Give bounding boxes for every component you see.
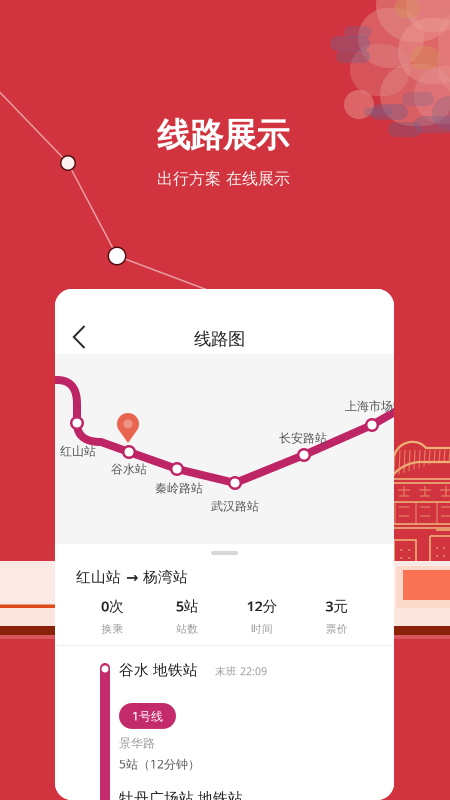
- staticText: 时间: [251, 622, 273, 636]
- staticText: 谷水站: [111, 462, 147, 477]
- staticText: 换乘: [101, 622, 123, 636]
- staticText: 线路图: [194, 328, 245, 350]
- staticText: 景华路: [119, 736, 155, 751]
- staticText: 5站（12分钟）: [119, 756, 200, 772]
- staticText: 红山站 → 杨湾站: [76, 568, 188, 586]
- staticText: 武汉路站: [211, 499, 259, 514]
- staticText: 上海市场站: [345, 399, 405, 414]
- staticText: 秦岭路站: [155, 481, 203, 496]
- staticText: 0次: [101, 596, 124, 615]
- staticText: 5站: [176, 596, 199, 615]
- staticText: 票价: [326, 622, 348, 636]
- staticText: 出行方案 在线展示: [157, 169, 290, 189]
- staticText: 红山站: [60, 444, 96, 459]
- staticText: 3元: [325, 596, 348, 615]
- staticText: 站数: [176, 622, 198, 636]
- staticText: 线路展示: [157, 115, 289, 156]
- staticText: 长安路站: [279, 431, 327, 446]
- staticText: 牡丹广场站 地铁站: [119, 789, 243, 800]
- staticText: 12分: [246, 596, 277, 615]
- staticText: 谷水 地铁站: [119, 661, 198, 679]
- staticText: 1号线: [132, 708, 163, 724]
- staticText: 末班 22:09: [215, 664, 267, 678]
- button[interactable]: 返回: [68, 315, 112, 359]
